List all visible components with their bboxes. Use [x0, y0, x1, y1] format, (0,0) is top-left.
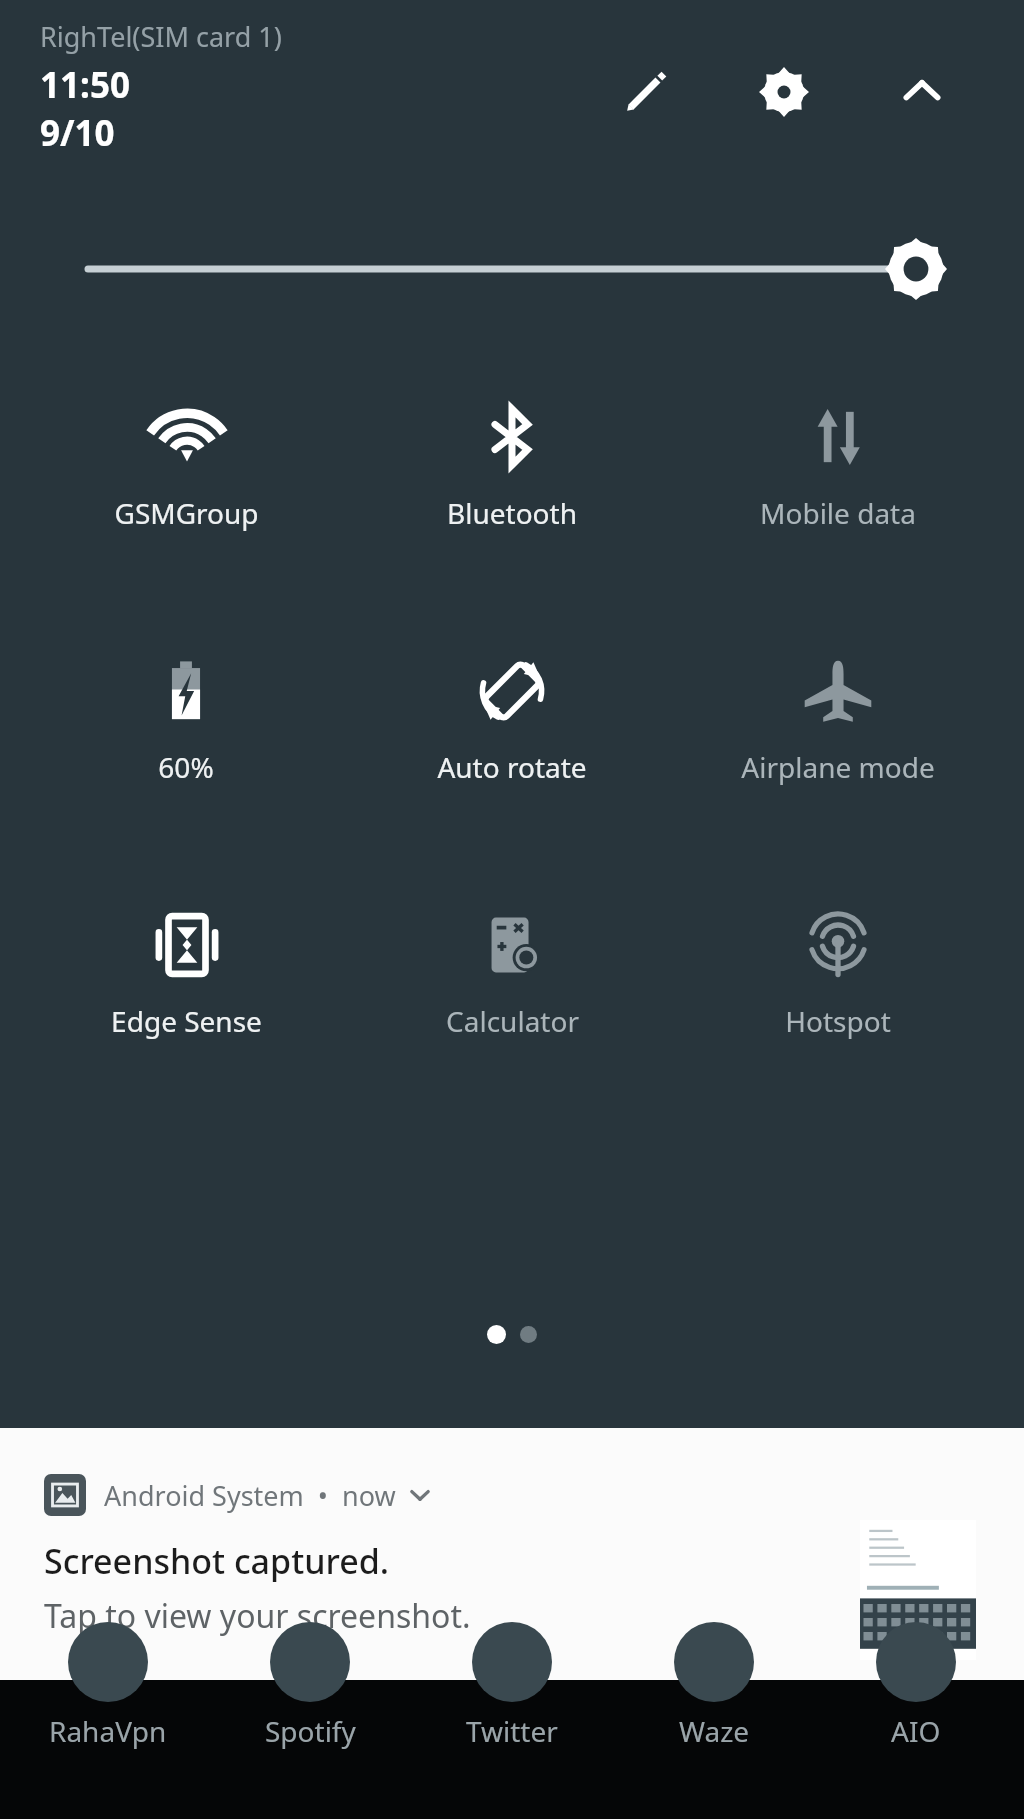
staticText: RighTel(SIM card 1) [40, 18, 282, 55]
button[interactable]: Spotify [210, 1680, 410, 1790]
staticText: GSMGroup [114, 494, 259, 532]
staticText: Android System • now [104, 1477, 396, 1514]
staticText: Bluetooth [447, 494, 577, 532]
staticText: Mobile data [760, 494, 916, 532]
button[interactable]: Android System • now [0, 1428, 1024, 1680]
button[interactable]: Collapse [880, 50, 964, 134]
button[interactable]: Waze [614, 1680, 814, 1790]
button[interactable]: Airplane mode [686, 654, 990, 830]
staticText: Auto rotate [437, 748, 587, 786]
staticText: 60% [158, 748, 214, 786]
staticText: Airplane mode [741, 748, 935, 786]
button[interactable]: Settings [742, 50, 826, 134]
staticText: Waze [679, 1712, 750, 1750]
staticText: Hotspot [785, 1002, 891, 1040]
button[interactable]: Edge Sense [34, 908, 338, 1084]
button[interactable]: RahaVpn [8, 1680, 208, 1790]
button[interactable]: Mobile data [686, 400, 990, 576]
staticText: Tap to view your screenshot. [44, 1594, 471, 1638]
button[interactable]: AIO [816, 1680, 1016, 1790]
button[interactable]: Calculator [360, 908, 664, 1084]
button[interactable]: Hotspot [686, 908, 990, 1084]
button[interactable]: Auto rotate [360, 654, 664, 830]
button[interactable]: GSMGroup [34, 400, 338, 576]
button[interactable]: 60% [34, 654, 338, 830]
staticText: Edge Sense [111, 1002, 262, 1040]
staticText: 9/10 [40, 109, 115, 157]
button[interactable]: Twitter [412, 1680, 612, 1790]
staticText: Screenshot captured. [44, 1538, 390, 1584]
staticText: Calculator [446, 1002, 579, 1040]
staticText: Twitter [466, 1712, 558, 1750]
staticText: AIO [891, 1712, 941, 1750]
button[interactable]: Edit tiles [604, 50, 688, 134]
staticText: 11:50 [40, 61, 130, 109]
button[interactable]: Bluetooth [360, 400, 664, 576]
button[interactable]: Brightness slider [0, 226, 1024, 312]
staticText: RahaVpn [49, 1712, 167, 1750]
staticText: Spotify [265, 1712, 356, 1750]
